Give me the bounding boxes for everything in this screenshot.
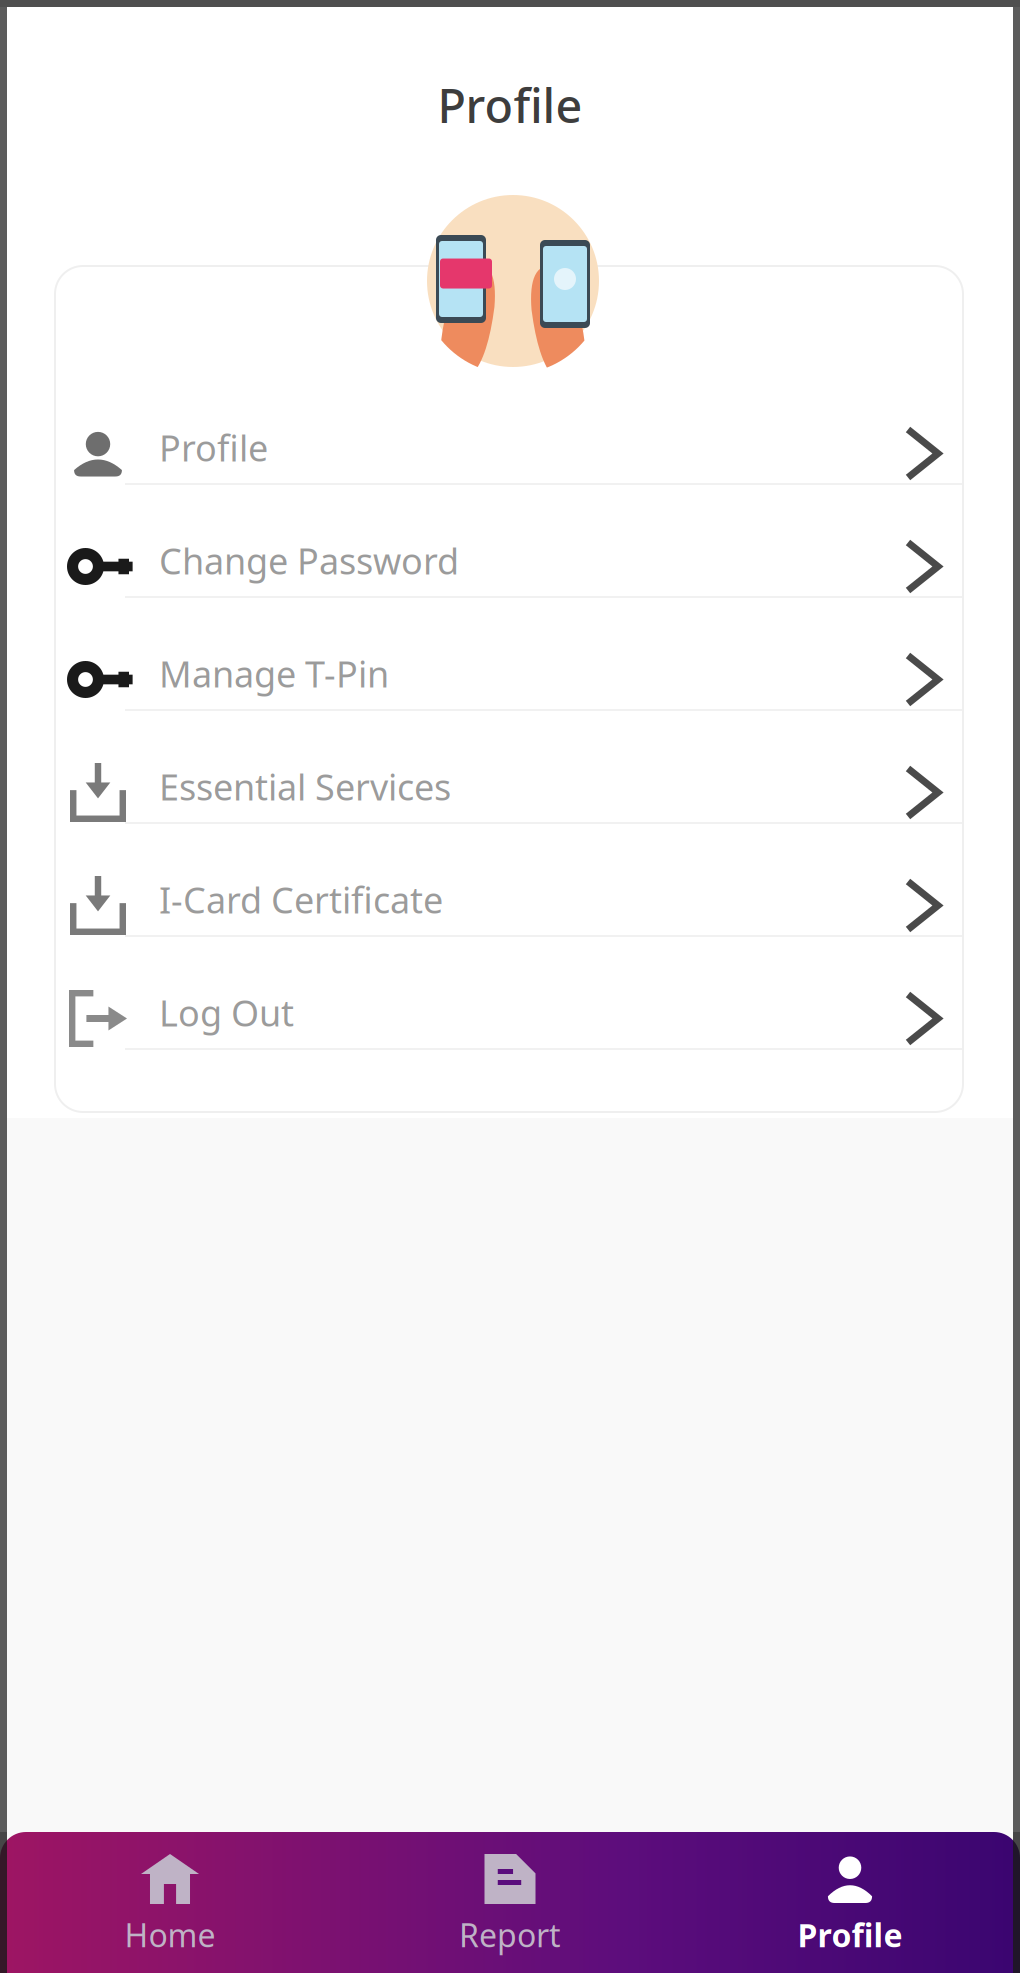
button[interactable]: Report (340, 1832, 680, 1973)
button[interactable]: Profile (680, 1832, 1020, 1973)
button[interactable]: Essential Services (55, 711, 963, 824)
button[interactable]: Profile (55, 372, 963, 485)
staticText: I-Card Certificate (159, 876, 443, 923)
button[interactable]: Log Out (55, 937, 963, 1050)
staticText: Log Out (159, 989, 294, 1036)
button[interactable]: Home (0, 1832, 340, 1973)
button[interactable]: Manage T-Pin (55, 598, 963, 711)
staticText: Essential Services (159, 763, 451, 810)
staticText: Profile (797, 1913, 902, 1956)
staticText: Change Password (159, 537, 459, 584)
staticText: Profile (159, 424, 268, 471)
staticText: Manage T-Pin (159, 650, 389, 697)
button[interactable]: I-Card Certificate (55, 824, 963, 937)
button[interactable]: Change Password (55, 485, 963, 598)
staticText: Profile (437, 74, 582, 136)
staticText: Home (124, 1913, 215, 1956)
staticText: Report (459, 1913, 561, 1956)
